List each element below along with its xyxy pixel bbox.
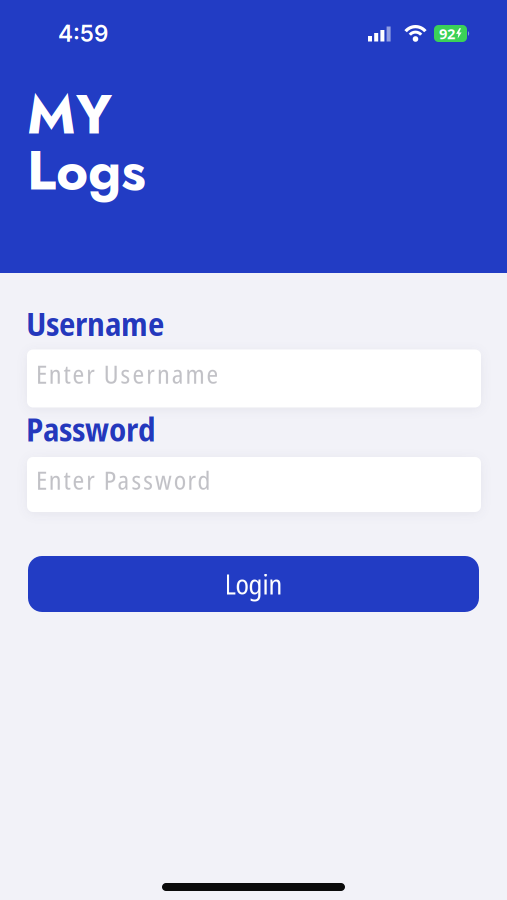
button[interactable]: Enter Username — [27, 349, 481, 407]
button[interactable]: Enter Password — [27, 457, 481, 512]
staticText: 92 — [439, 24, 455, 43]
button[interactable]: Login — [28, 556, 479, 612]
staticText: 4:59 — [58, 20, 108, 47]
staticText: Logs — [27, 131, 146, 210]
staticText: Username — [26, 301, 164, 345]
staticText: Enter Password — [36, 463, 210, 497]
staticText: Enter Username — [36, 357, 218, 391]
staticText: MY — [27, 75, 112, 154]
staticText: Login — [224, 565, 282, 603]
staticText: Password — [26, 406, 156, 451]
